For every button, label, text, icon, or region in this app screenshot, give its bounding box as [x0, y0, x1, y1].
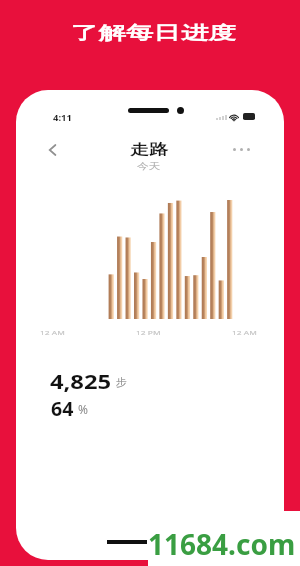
staticText: 12 AM: [232, 329, 257, 337]
button[interactable]: Back: [40, 138, 64, 162]
button[interactable]: More options: [228, 142, 255, 157]
staticText: 4:11: [53, 111, 72, 123]
staticText: 12 AM: [40, 329, 65, 337]
staticText: 11684.com: [148, 525, 296, 563]
staticText: %: [78, 401, 88, 417]
staticText: 走路: [130, 141, 168, 158]
staticText: 了解每日进度: [71, 22, 236, 44]
staticText: 12 PM: [136, 329, 161, 337]
staticText: 4,825: [50, 367, 112, 395]
staticText: 步: [116, 375, 127, 389]
staticText: 今天: [137, 160, 160, 171]
staticText: 64: [51, 396, 74, 422]
